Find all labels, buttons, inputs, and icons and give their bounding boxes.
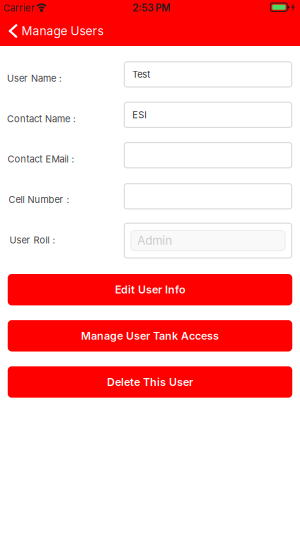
button[interactable]: Edit User Info	[8, 274, 292, 305]
staticText: User Name :	[7, 73, 62, 84]
staticText: Carrier	[3, 2, 35, 14]
staticText: User Roll :	[9, 234, 55, 246]
button[interactable]: Manage Users	[0, 16, 114, 45]
staticText: ESI	[132, 109, 147, 120]
button[interactable]: Delete This User	[8, 366, 292, 398]
staticText: 2:53 PM	[132, 2, 170, 14]
staticText: Admin	[137, 233, 172, 248]
staticText: Manage User Tank Access	[81, 329, 219, 342]
staticText: Contact Name :	[7, 113, 76, 124]
staticText: Cell Number :	[8, 194, 69, 205]
staticText: Test	[132, 69, 150, 80]
staticText: Delete This User	[107, 375, 193, 388]
staticText: Edit User Info	[115, 283, 185, 296]
button[interactable]: Manage User Tank Access	[8, 320, 292, 351]
staticText: Contact EMail :	[7, 154, 74, 165]
staticText: Manage Users	[22, 24, 104, 38]
